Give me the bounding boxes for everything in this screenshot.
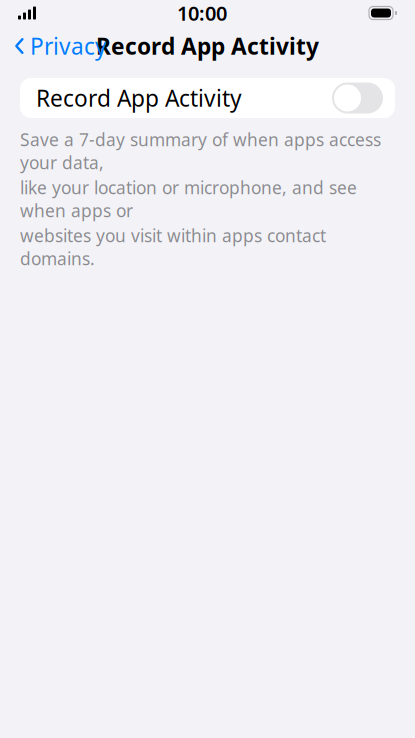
staticText: 10:00 [177,0,227,26]
staticText: Privacy [30,31,107,61]
staticText: Record App Activity [96,31,319,61]
button[interactable]: Privacy [0,25,107,67]
staticText: Save a 7-day summary of when apps access… [20,128,381,174]
staticText: websites you visit within apps contact d… [20,224,326,270]
staticText: like your location or microphone, and se… [20,176,357,222]
staticText: Record App Activity [36,83,242,113]
button[interactable]: Record App Activity [20,78,395,118]
